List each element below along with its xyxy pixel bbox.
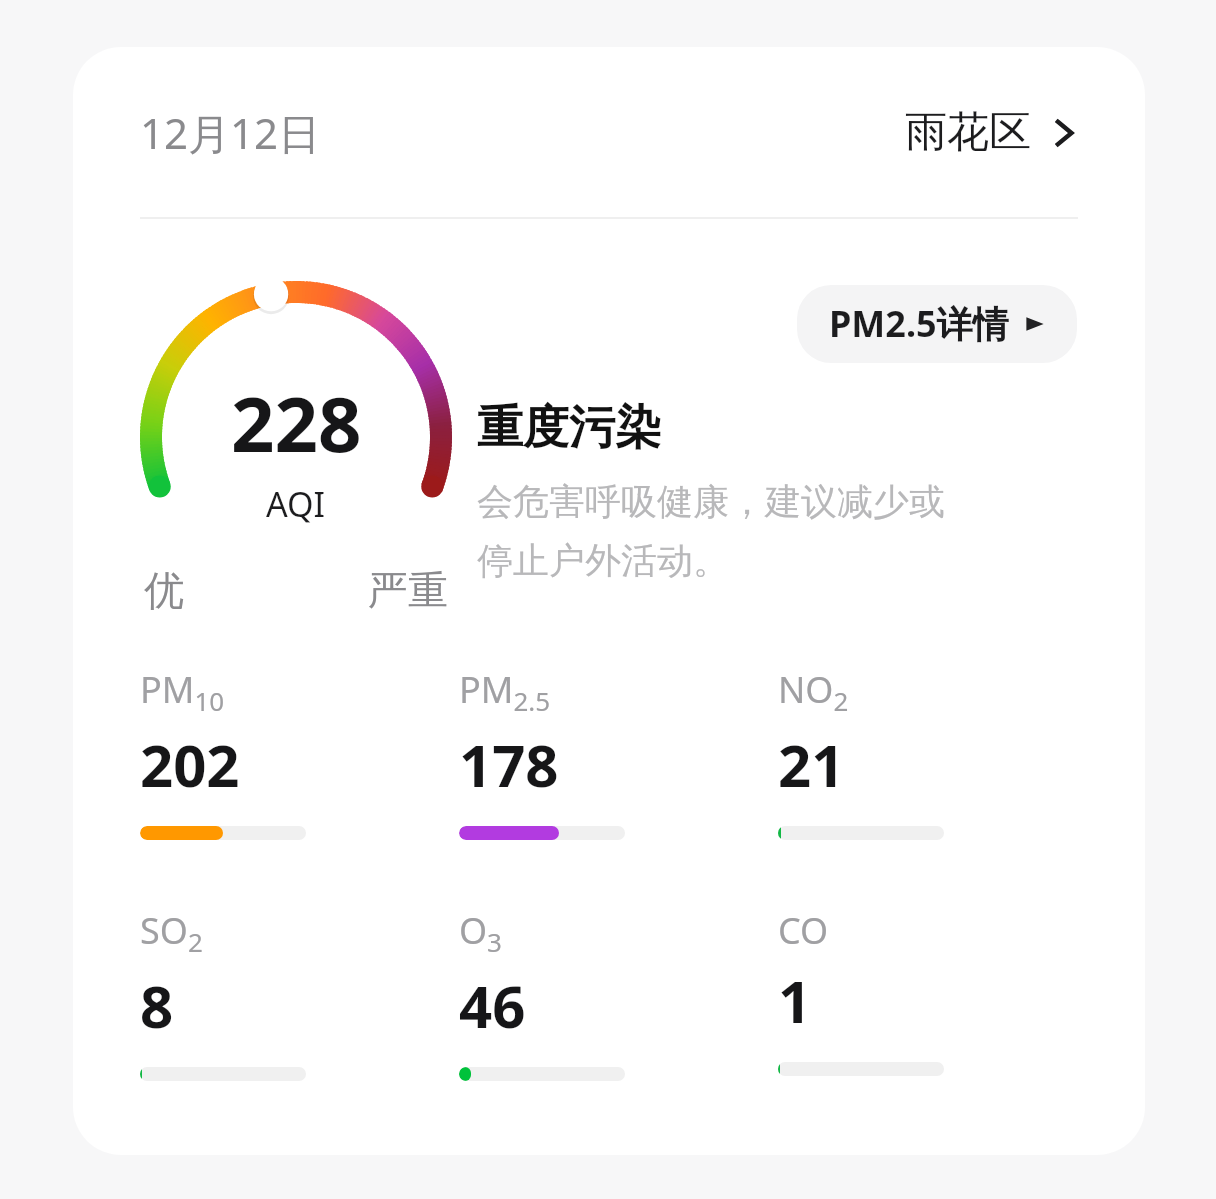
staticText: 1 xyxy=(778,961,812,1040)
staticText: CO xyxy=(778,906,829,955)
button[interactable]: SO2 xyxy=(140,906,447,1081)
button[interactable]: PM2.5详情 xyxy=(797,285,1077,363)
staticText: PM2.5 xyxy=(459,665,551,719)
other: Change location xyxy=(1047,116,1081,150)
other: Open PM2.5 details xyxy=(1023,312,1047,336)
button[interactable]: CO xyxy=(778,906,1085,1076)
staticText: 会危害呼吸健康，建议减少或 xyxy=(477,479,945,524)
staticText: PM2.5详情 xyxy=(829,299,1009,348)
button[interactable]: 雨花区 xyxy=(901,98,1085,167)
staticText: O3 xyxy=(459,906,502,960)
button[interactable]: PM10 xyxy=(140,665,447,840)
staticText: 12月12日 xyxy=(140,104,321,161)
staticText: AQI xyxy=(266,481,326,527)
staticText: NO2 xyxy=(778,665,849,719)
staticText: 8 xyxy=(140,966,174,1045)
staticText: 178 xyxy=(459,725,559,804)
staticText: 228 xyxy=(231,371,362,475)
button[interactable]: NO2 xyxy=(778,665,1085,840)
staticText: 严重 xyxy=(368,565,448,615)
staticText: 优 xyxy=(144,565,184,615)
staticText: 雨花区 xyxy=(905,106,1031,159)
button[interactable]: O3 xyxy=(459,906,766,1081)
staticText: SO2 xyxy=(140,906,203,960)
staticText: PM10 xyxy=(140,665,225,719)
staticText: 46 xyxy=(459,966,526,1045)
staticText: 停止户外活动。 xyxy=(477,538,729,583)
staticText: 202 xyxy=(140,725,240,804)
button[interactable]: PM2.5 xyxy=(459,665,766,840)
staticText: 重度污染 xyxy=(477,399,661,457)
staticText: 21 xyxy=(778,725,845,804)
